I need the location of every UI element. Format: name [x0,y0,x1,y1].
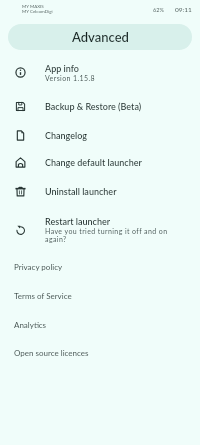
staticText: Backup & Restore (Beta) [45,101,142,112]
staticText: 09:11 [175,6,192,14]
other: Backup and restore [15,101,26,112]
button[interactable]: Changelog [0,128,200,143]
staticText: Privacy policy [14,262,63,272]
staticText: Open source licences [14,348,89,358]
button[interactable]: Analytics [0,316,200,334]
staticText: App info [45,63,79,74]
button[interactable]: Open source licences [0,344,200,362]
staticText: again? [45,235,67,243]
staticText: 62% [153,7,164,14]
button[interactable]: Restart launcher [0,214,200,245]
staticText: Advanced [72,29,129,45]
staticText: MY CelcomDigi [22,9,53,14]
staticText: Change default launcher [45,157,142,168]
staticText: Have you tried turning it off and on [45,227,168,235]
other: Uninstall launcher [15,186,26,197]
staticText: Version 1.15.8 [45,74,95,82]
other: App info [15,67,26,78]
other: Restart launcher [15,224,26,235]
staticText: Restart launcher [45,216,111,227]
button[interactable]: Uninstall launcher [0,184,200,199]
button[interactable]: App info [0,61,200,84]
staticText: Uninstall launcher [45,186,117,197]
other: Change default launcher [15,157,26,168]
button[interactable]: Advanced [8,24,192,50]
staticText: Analytics [14,320,47,330]
staticText: MY MAXIS [22,4,44,9]
staticText: Terms of Service [14,291,72,301]
other: Changelog [15,130,26,141]
staticText: Changelog [45,130,88,141]
button[interactable]: Terms of Service [0,287,200,305]
button[interactable]: Privacy policy [0,258,200,276]
button[interactable]: Backup and restore [0,99,200,114]
button[interactable]: Change default launcher [0,155,200,170]
